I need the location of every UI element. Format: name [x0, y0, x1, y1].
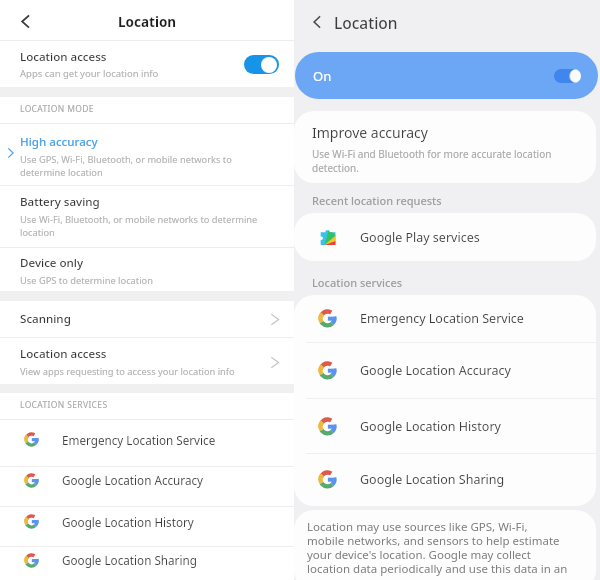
staticText: LOCATION SERVICES [20, 399, 108, 411]
staticText: Device only [20, 255, 84, 271]
button[interactable]: Google Location Sharing [294, 454, 596, 505]
button[interactable]: Location access [0, 41, 294, 87]
button[interactable]: Emergency Location Service [0, 420, 294, 459]
staticText: Use GPS, Wi-Fi, Bluetooth, or mobile net… [20, 153, 232, 179]
staticText: Battery saving [20, 194, 100, 210]
staticText: Scanning [20, 311, 71, 327]
staticText: Use GPS to determine location [20, 274, 153, 287]
button[interactable]: Google Location History [294, 399, 596, 453]
staticText: Google Location Sharing [360, 471, 505, 488]
staticText: Use Wi-Fi and Bluetooth for more accurat… [312, 147, 552, 175]
staticText: Location services [312, 275, 403, 290]
staticText: Emergency Location Service [360, 310, 524, 327]
staticText: Emergency Location Service [62, 432, 216, 448]
button[interactable]: Google Location Accuracy [294, 343, 596, 398]
staticText: Google Location History [62, 514, 194, 530]
staticText: Location [118, 13, 177, 31]
staticText: Google Play services [360, 229, 480, 246]
button[interactable]: On [295, 52, 598, 99]
staticText: Google Location Sharing [62, 552, 197, 568]
staticText: Google Location Accuracy [360, 362, 511, 379]
button[interactable]: Battery saving [0, 186, 294, 247]
button[interactable]: Improve accuracy [294, 111, 596, 183]
button[interactable]: High accuracy [0, 124, 294, 184]
button[interactable] [244, 55, 279, 74]
staticText: Google Location Accuracy [62, 472, 204, 488]
staticText: Google Location History [360, 418, 501, 435]
staticText: Use Wi-Fi, Bluetooth, or mobile networks… [20, 213, 258, 239]
staticText: View apps requesting to access your loca… [20, 365, 235, 378]
staticText: LOCATION MODE [20, 103, 94, 115]
button[interactable]: Device only [0, 248, 294, 291]
staticText: Location access [20, 346, 107, 362]
staticText: High accuracy [20, 134, 98, 150]
button[interactable]: Google Location Sharing [0, 543, 294, 577]
staticText: Location access [20, 49, 107, 65]
button[interactable]: Google Play services [294, 213, 596, 261]
button[interactable]: Google Location Accuracy [0, 461, 294, 499]
button[interactable]: Location access [0, 338, 294, 384]
staticText: Location [334, 12, 398, 33]
button[interactable]: Scanning [0, 301, 294, 337]
staticText: Apps can get your location info [20, 67, 159, 80]
staticText: Location may use sources like GPS, Wi-Fi… [307, 519, 568, 577]
staticText: Improve accuracy [312, 123, 428, 142]
staticText: Recent location requests [312, 193, 442, 208]
button[interactable]: Back [13, 9, 37, 33]
button[interactable]: Back [306, 11, 328, 33]
button[interactable]: Google Location History [0, 502, 294, 541]
button[interactable]: Emergency Location Service [294, 295, 596, 342]
staticText: On [313, 67, 332, 85]
